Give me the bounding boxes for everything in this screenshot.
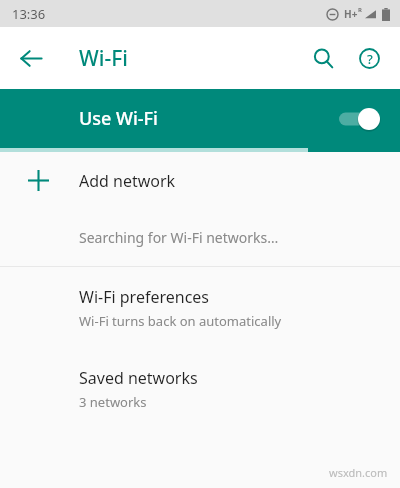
staticText: Use Wi-Fi (79, 106, 158, 131)
staticText: 13:36 (12, 5, 46, 23)
staticText: R (358, 6, 362, 14)
staticText: ? (367, 50, 373, 68)
button[interactable]: Back (8, 35, 54, 81)
staticText: Wi-Fi preferences (79, 286, 210, 308)
staticText: Searching for Wi-Fi networks… (79, 228, 279, 247)
button[interactable]: Search (300, 35, 346, 81)
button[interactable]: Wi-Fi preferences (0, 267, 400, 348)
button[interactable]: Use Wi-Fi toggle (338, 104, 386, 134)
staticText: Add network (79, 170, 176, 192)
staticText: 3 networks (79, 393, 147, 411)
staticText: H+ (344, 7, 358, 21)
staticText: Saved networks (79, 367, 198, 389)
staticText: Wi-Fi turns back on automatically (79, 312, 282, 330)
button[interactable]: Add network (0, 152, 400, 209)
staticText: Wi-Fi (79, 44, 128, 73)
button[interactable]: Saved networks (0, 348, 400, 429)
button[interactable]: Use Wi-Fi (0, 89, 400, 148)
button[interactable]: Help (346, 35, 392, 81)
staticText: wsxdn.com (329, 465, 388, 480)
